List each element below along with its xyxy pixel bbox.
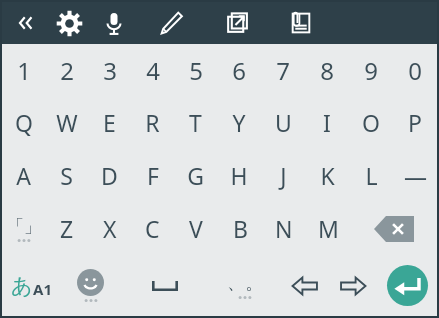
staticText: 6 [232,54,246,87]
button[interactable]: G [174,149,217,202]
staticText: — [404,160,427,191]
staticText: 2 [60,54,74,87]
staticText: Q [15,107,33,138]
staticText: Z [60,213,74,244]
button[interactable]: Collapse keyboard [2,2,48,44]
staticText: 8 [320,54,334,87]
staticText: Y [232,107,246,138]
staticText: O [362,107,380,138]
button[interactable]: 3 [88,44,131,96]
staticText: V [189,213,203,244]
button[interactable]: Clipboard [270,2,332,44]
staticText: あ [11,273,33,299]
button[interactable]: J [261,149,305,202]
button[interactable]: Q [2,96,45,149]
button[interactable]: Space [120,255,209,316]
staticText: 、。 [227,272,263,295]
button[interactable]: L [349,149,393,202]
staticText: C [145,213,160,244]
staticText: W [56,107,78,138]
button[interactable]: T [174,96,217,149]
button[interactable]: 1 [2,44,45,96]
staticText: N [275,213,293,244]
staticText: 4 [146,54,160,87]
staticText: X [103,213,117,244]
staticText: D [101,160,118,191]
button[interactable]: Move cursor left [281,255,329,316]
button[interactable]: S [45,149,88,202]
staticText: A1 [33,279,52,299]
button[interactable]: 、。 [209,255,281,316]
button[interactable]: R [131,96,174,149]
staticText: P [408,107,422,138]
button[interactable]: 7 [261,44,305,96]
staticText: U [275,107,292,138]
staticText: E [103,107,116,138]
staticText: R [145,107,160,138]
button[interactable]: F [131,149,174,202]
button[interactable]: Enter [377,255,437,316]
staticText: J [280,160,287,191]
button[interactable]: Emoji [61,255,120,316]
staticText: B [233,213,248,244]
button[interactable]: X [88,202,131,255]
staticText: 1 [17,54,31,87]
button[interactable]: V [174,202,218,255]
button[interactable]: 8 [305,44,349,96]
button[interactable]: 5 [174,44,217,96]
staticText: F [147,160,159,191]
staticText: I [323,107,331,138]
button[interactable]: H [217,149,261,202]
button[interactable]: Handwriting [138,2,204,44]
staticText: 7 [276,54,290,87]
button[interactable]: B [218,202,262,255]
button[interactable]: 0 [393,44,437,96]
button[interactable]: C [131,202,174,255]
staticText: H [230,160,248,191]
button[interactable]: Y [217,96,261,149]
staticText: L [365,160,378,191]
button[interactable]: 4 [131,44,174,96]
button[interactable]: W [45,96,88,149]
button[interactable]: K [305,149,349,202]
button[interactable]: M [306,202,350,255]
button[interactable]: E [88,96,131,149]
staticText: 5 [189,54,203,87]
staticText: M [318,213,339,244]
button[interactable]: O [349,96,393,149]
button[interactable]: あ [2,255,61,316]
button[interactable]: 9 [349,44,393,96]
staticText: 9 [364,54,378,87]
staticText: 3 [103,54,117,87]
button[interactable]: Move cursor right [329,255,377,316]
button[interactable]: 6 [217,44,261,96]
button[interactable]: Brackets [2,202,45,255]
staticText: 0 [408,54,422,87]
button[interactable]: Backspace [350,202,437,255]
button[interactable]: — [393,149,437,202]
button[interactable]: D [88,149,131,202]
button[interactable]: P [393,96,437,149]
button[interactable]: Settings [48,2,90,44]
button[interactable]: A [2,149,45,202]
staticText: S [60,160,73,191]
button[interactable]: Z [45,202,88,255]
button[interactable]: Floating keyboard [204,2,270,44]
staticText: G [187,160,204,191]
button[interactable]: 2 [45,44,88,96]
button[interactable]: N [262,202,306,255]
staticText: A [16,160,31,191]
button[interactable]: Voice input [90,2,138,44]
staticText: T [189,107,202,138]
button[interactable]: I [305,96,349,149]
staticText: 「」 [7,216,41,237]
button[interactable]: U [261,96,305,149]
staticText: K [320,160,335,191]
